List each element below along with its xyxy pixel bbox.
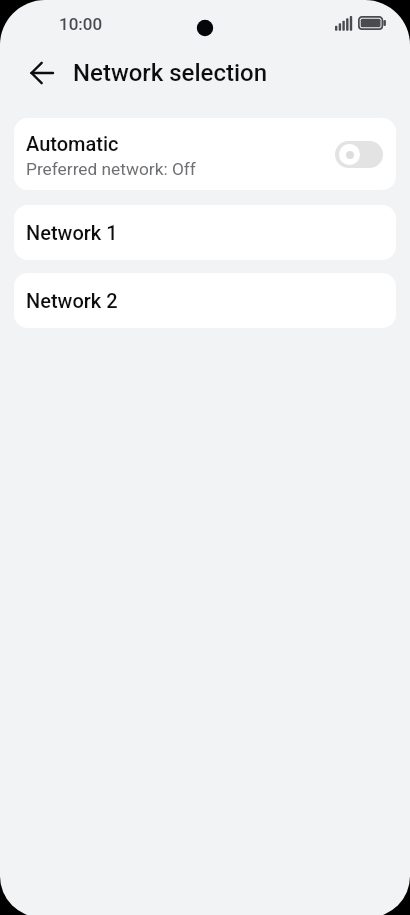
staticText: Network 1 [26, 221, 118, 244]
button[interactable]: Network 1 [14, 205, 396, 260]
button[interactable]: Network 2 [14, 273, 396, 328]
staticText: Automatic [26, 132, 119, 155]
staticText: Network 2 [26, 289, 118, 312]
staticText: Preferred network: Off [26, 159, 196, 179]
staticText: 10:00 [59, 14, 103, 34]
button[interactable]: Automatic [14, 118, 396, 190]
button[interactable]: Automatic network toggle [335, 141, 383, 168]
staticText: Network selection [73, 59, 268, 87]
button[interactable]: Back [21, 53, 61, 93]
